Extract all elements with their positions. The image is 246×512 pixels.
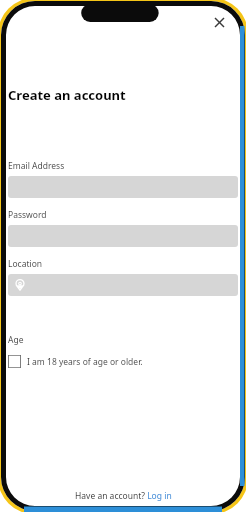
staticText: Age (8, 334, 24, 346)
staticText: Email Address (8, 160, 65, 172)
staticText: Password (8, 209, 47, 221)
button[interactable] (8, 274, 238, 296)
button[interactable]: Have an account? Log in (75, 490, 172, 502)
staticText: Have an account? Log in (75, 490, 172, 502)
staticText: I am 18 years of age or older. (27, 356, 143, 368)
staticText: Location (8, 258, 43, 270)
button[interactable]: Close (209, 12, 229, 32)
staticText: Create an account (8, 86, 126, 104)
button[interactable]: I am 18 years of age or older. (8, 355, 143, 368)
